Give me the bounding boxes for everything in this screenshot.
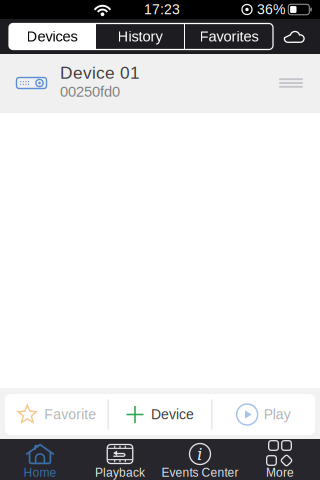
button[interactable]: Home	[0, 439, 80, 480]
staticText: 36%	[257, 2, 285, 17]
button[interactable]: History	[96, 23, 184, 49]
button[interactable]: Play	[212, 394, 315, 435]
staticText: Home	[23, 466, 56, 479]
staticText: Device 01	[60, 63, 140, 82]
button[interactable]: Cloud sync	[273, 19, 315, 53]
staticText: 17:23	[144, 2, 180, 17]
staticText: History	[117, 28, 162, 45]
staticText: 00250fd0	[60, 83, 120, 100]
staticText: i	[197, 444, 203, 464]
button[interactable]: More	[240, 439, 320, 480]
staticText: Play	[264, 407, 291, 422]
button[interactable]: Playback	[80, 439, 160, 480]
staticText: Playback	[95, 466, 145, 479]
staticText: Favorites	[199, 28, 258, 45]
button[interactable]: i	[160, 439, 240, 480]
button[interactable]: Device	[109, 394, 211, 435]
button[interactable]: Device 01	[0, 54, 320, 112]
staticText: Devices	[26, 28, 77, 45]
staticText: Device	[151, 407, 194, 422]
staticText: Favorite	[44, 407, 96, 422]
button[interactable]: Favorite	[5, 394, 108, 435]
button[interactable]: Devices	[9, 23, 95, 49]
staticText: More	[266, 466, 294, 479]
button[interactable]: Favorites	[185, 23, 273, 49]
staticText: Events Center	[161, 466, 238, 479]
